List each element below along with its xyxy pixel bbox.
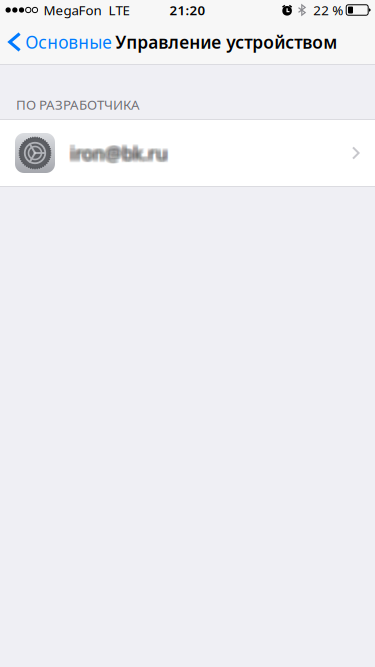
staticText: iron@bk.ru xyxy=(68,140,166,164)
staticText: LTE xyxy=(109,1,130,19)
staticText: Управление устройством xyxy=(115,30,337,53)
staticText: iron@bk.ru xyxy=(70,141,168,165)
staticText: iron@bk.ru xyxy=(71,139,169,163)
staticText: MegaFon xyxy=(44,1,102,19)
staticText: iron@bk.ru xyxy=(69,140,167,164)
staticText: iron@bk.ru xyxy=(71,140,169,164)
staticText: iron@bk.ru xyxy=(69,142,167,167)
staticText: iron@bk.ru xyxy=(68,142,166,166)
staticText: iron@bk.ru xyxy=(72,142,170,167)
staticText: iron@bk.ru xyxy=(71,141,169,165)
staticText: iron@bk.ru xyxy=(72,139,170,163)
button[interactable]: iron@bk.ru xyxy=(0,120,375,186)
staticText: iron@bk.ru xyxy=(72,142,170,166)
staticText: 22 % xyxy=(313,1,343,19)
staticText: iron@bk.ru xyxy=(70,139,168,163)
button[interactable]: Основные xyxy=(0,20,115,64)
staticText: iron@bk.ru xyxy=(71,142,169,167)
staticText: iron@bk.ru xyxy=(68,139,166,163)
staticText: ПО РАЗРАБОТЧИКА xyxy=(16,96,140,113)
staticText: iron@bk.ru xyxy=(69,142,167,166)
staticText: iron@bk.ru xyxy=(69,141,167,165)
staticText: Основные xyxy=(25,30,112,53)
staticText: iron@bk.ru xyxy=(68,142,166,167)
staticText: iron@bk.ru xyxy=(68,141,166,165)
staticText: iron@bk.ru xyxy=(71,142,169,166)
staticText: iron@bk.ru xyxy=(69,139,167,163)
staticText: iron@bk.ru xyxy=(72,140,170,164)
staticText: iron@bk.ru xyxy=(72,141,170,165)
staticText: 21:20 xyxy=(169,1,205,19)
staticText: iron@bk.ru xyxy=(70,142,168,167)
staticText: iron@bk.ru xyxy=(70,140,168,164)
staticText: iron@bk.ru xyxy=(70,142,168,166)
